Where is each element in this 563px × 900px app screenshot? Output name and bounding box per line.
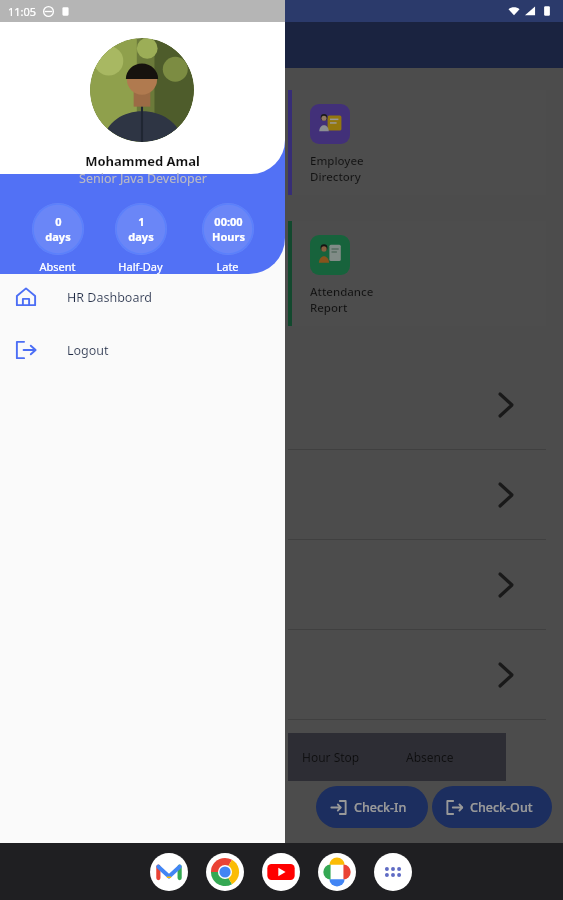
staticText: HR Dashboard	[67, 289, 153, 306]
staticText: Hour Stop	[302, 749, 360, 765]
staticText: Mohammed Amal	[85, 152, 200, 170]
staticText: Absence	[406, 749, 454, 765]
button[interactable]	[288, 360, 546, 450]
staticText: Logout	[67, 342, 109, 359]
button[interactable]: Profile photo	[90, 38, 194, 142]
button[interactable]: YouTube	[262, 853, 300, 891]
button[interactable]: 00:00	[194, 203, 261, 274]
staticText: 0	[55, 214, 62, 229]
staticText: Employee	[310, 153, 364, 169]
button[interactable]	[288, 540, 546, 630]
staticText: Late	[216, 259, 239, 274]
staticText: Directory	[310, 169, 361, 185]
staticText: Hours	[212, 229, 245, 244]
button[interactable]: 1	[107, 203, 174, 274]
staticText: 00:00	[214, 214, 243, 229]
button[interactable]: Check-In	[316, 786, 428, 828]
staticText: days	[128, 229, 154, 244]
staticText: Report	[310, 300, 348, 316]
button[interactable]: Chrome	[206, 853, 244, 891]
button[interactable]: Gmail	[150, 853, 188, 891]
button[interactable]: Hour Stop	[288, 733, 506, 781]
staticText: 11:05	[8, 4, 37, 19]
button[interactable]: HR Dashboard	[0, 276, 285, 318]
button[interactable]: Logout	[0, 329, 285, 371]
staticText: 1	[138, 214, 145, 229]
staticText: Check-Out	[470, 799, 533, 816]
staticText: Attendance	[310, 284, 374, 300]
staticText: Half-Day	[118, 259, 163, 274]
button[interactable]	[288, 450, 546, 540]
button[interactable]: Check-Out	[432, 786, 552, 828]
staticText: Absent	[39, 259, 76, 274]
button[interactable]: 0	[24, 203, 91, 274]
staticText: days	[45, 229, 71, 244]
button[interactable]: All apps	[374, 853, 412, 891]
button[interactable]: Employee	[288, 90, 546, 195]
button[interactable]: Attendance	[288, 221, 546, 326]
button[interactable]	[288, 630, 546, 720]
staticText: Check-In	[354, 799, 407, 816]
button[interactable]: Photos	[318, 853, 356, 891]
staticText: Senior Java Developer	[79, 170, 207, 187]
